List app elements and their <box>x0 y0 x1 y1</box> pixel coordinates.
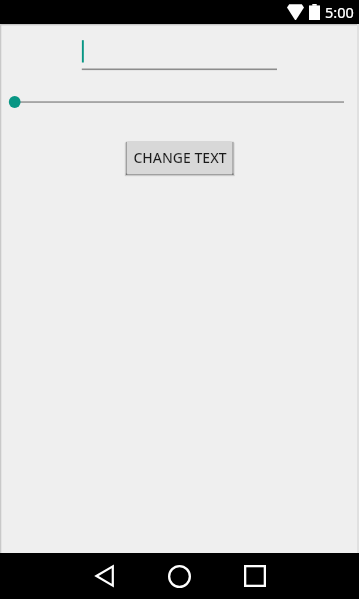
button[interactable]: Back <box>84 553 124 599</box>
button[interactable]: CHANGE TEXT <box>127 141 232 174</box>
staticText: 5:00 <box>325 2 354 22</box>
button[interactable]: Slider <box>0 89 359 115</box>
button[interactable]: Recent apps <box>235 553 275 599</box>
button[interactable]: Home <box>159 553 199 599</box>
staticText: CHANGE TEXT <box>133 148 227 167</box>
button[interactable]: Text field <box>79 39 277 70</box>
